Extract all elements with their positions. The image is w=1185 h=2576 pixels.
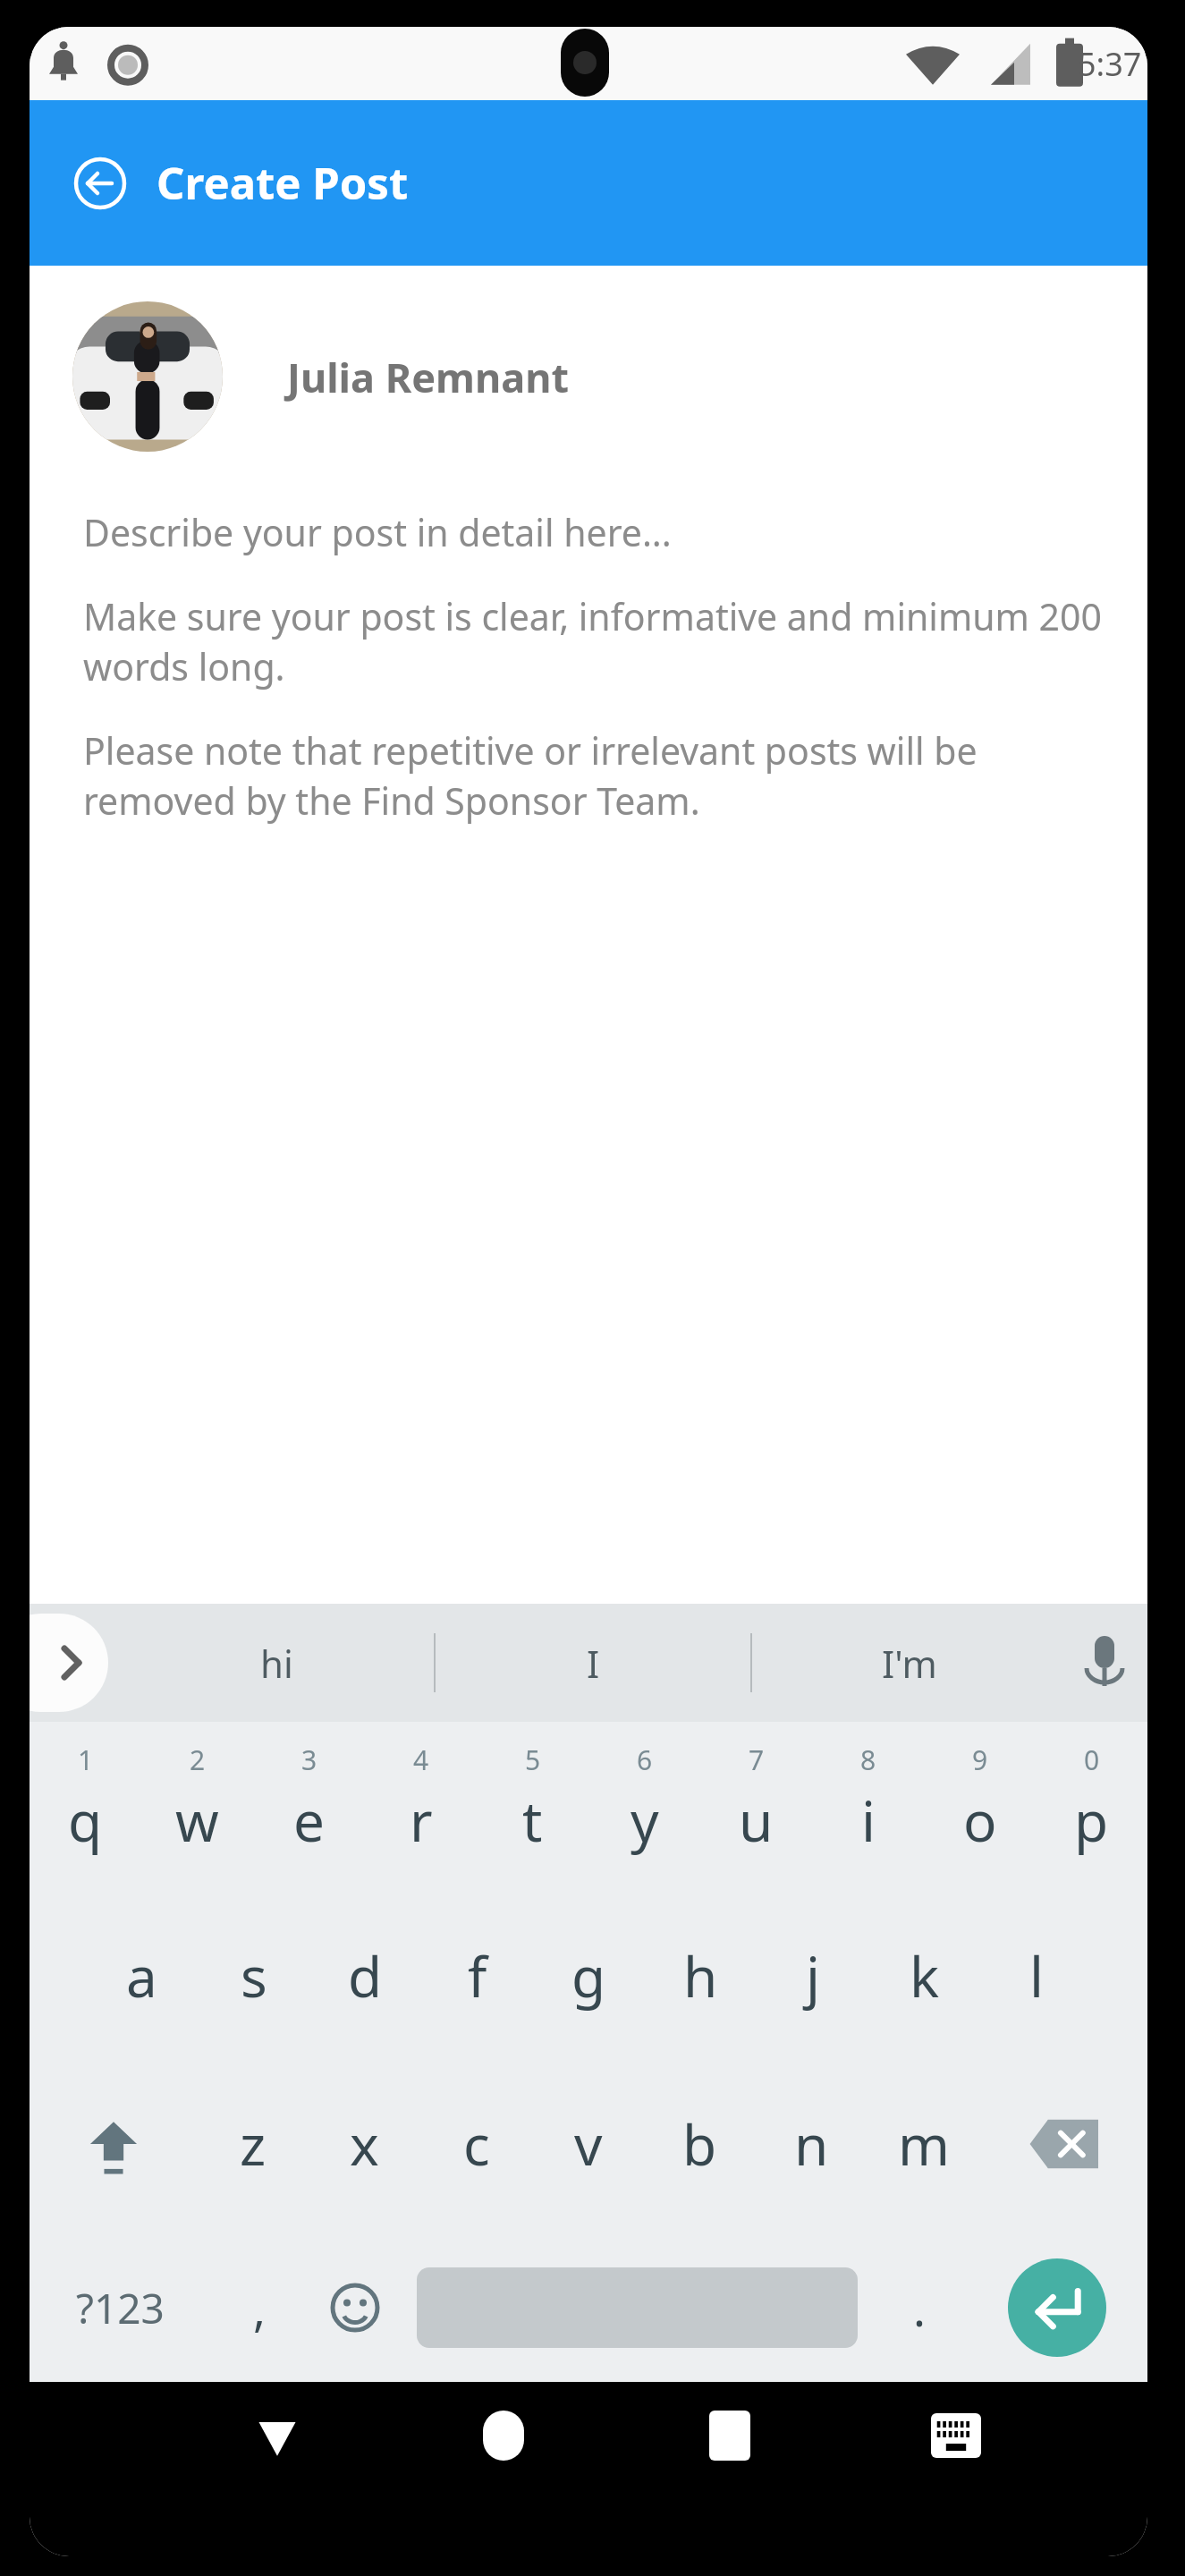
staticText: Make sure your post is clear, informativ… (83, 591, 1105, 691)
button[interactable]: Back (67, 150, 133, 216)
staticText: m (898, 2106, 950, 2182)
staticText: n (794, 2106, 829, 2182)
button[interactable]: 3 (253, 1729, 365, 1886)
button[interactable]: Profile photo (72, 301, 223, 452)
button[interactable]: Back (165, 2382, 390, 2556)
staticText: t (522, 1783, 543, 1858)
staticText: , (253, 2276, 266, 2340)
button[interactable]: 4 (365, 1729, 477, 1886)
button[interactable]: l (980, 1897, 1092, 2055)
staticText: r (410, 1783, 433, 1858)
button[interactable]: I'm (752, 1604, 1067, 1722)
button[interactable]: 6 (588, 1729, 700, 1886)
staticText: 4 (413, 1741, 429, 1778)
staticText: Describe your post in detail here... (83, 507, 672, 557)
button[interactable]: Home (390, 2382, 616, 2556)
staticText: 1 (78, 1741, 94, 1778)
staticText: o (963, 1783, 997, 1858)
button[interactable]: v (532, 2065, 644, 2223)
staticText: . (913, 2276, 926, 2340)
button[interactable]: j (757, 1897, 868, 2055)
staticText: I (587, 1638, 600, 1689)
staticText: 2 (190, 1741, 206, 1778)
staticText: e (293, 1783, 325, 1858)
staticText: Julia Remnant (287, 350, 569, 404)
staticText: 5:37 (1078, 42, 1142, 86)
button[interactable]: ?123 (30, 2233, 211, 2382)
staticText: z (240, 2106, 267, 2182)
button[interactable]: z (197, 2065, 309, 2223)
staticText: j (806, 1938, 820, 2013)
button[interactable]: x (309, 2065, 420, 2223)
button[interactable]: f (421, 1897, 533, 2055)
button[interactable]: Space (402, 2233, 871, 2382)
staticText: g (571, 1938, 606, 2013)
button[interactable]: 5 (477, 1729, 588, 1886)
staticText: l (1029, 1938, 1044, 2013)
staticText: i (861, 1783, 876, 1858)
button[interactable]: Hide keyboard (842, 2382, 1069, 2556)
button[interactable]: g (533, 1897, 645, 2055)
staticText: q (68, 1783, 103, 1858)
button[interactable]: m (868, 2065, 979, 2223)
staticText: 0 (1084, 1741, 1100, 1778)
staticText: 6 (637, 1741, 653, 1778)
button[interactable]: c (420, 2065, 532, 2223)
staticText: c (463, 2106, 490, 2182)
button[interactable]: hi (119, 1604, 434, 1722)
button[interactable]: 0 (1036, 1729, 1147, 1886)
staticText: 9 (972, 1741, 988, 1778)
staticText: y (631, 1783, 659, 1858)
staticText: s (241, 1938, 267, 2013)
button[interactable]: Emoji (307, 2233, 402, 2382)
button[interactable]: 2 (141, 1729, 253, 1886)
staticText: a (126, 1938, 157, 2013)
button[interactable]: b (644, 2065, 756, 2223)
staticText: p (1074, 1783, 1109, 1858)
button[interactable]: 8 (812, 1729, 924, 1886)
staticText: u (739, 1783, 774, 1858)
button[interactable]: Expand suggestions (30, 1614, 108, 1712)
staticText: 8 (860, 1741, 876, 1778)
staticText: h (683, 1938, 718, 2013)
button[interactable]: Shift (30, 2065, 197, 2223)
button[interactable]: d (309, 1897, 421, 2055)
staticText: Create Post (157, 153, 409, 213)
button[interactable]: I (436, 1604, 750, 1722)
button[interactable]: h (645, 1897, 757, 2055)
staticText: ?123 (76, 2280, 165, 2336)
button[interactable]: 1 (30, 1729, 141, 1886)
staticText: 3 (301, 1741, 317, 1778)
staticText: b (682, 2106, 717, 2182)
button[interactable]: . (871, 2233, 967, 2382)
button[interactable]: n (756, 2065, 868, 2223)
button[interactable]: Backspace (979, 2065, 1147, 2223)
staticText: hi (260, 1638, 293, 1689)
staticText: 7 (749, 1741, 765, 1778)
button[interactable]: Recents (616, 2382, 842, 2556)
staticText: k (910, 1938, 940, 2013)
button[interactable]: Enter (967, 2233, 1147, 2382)
staticText: v (574, 2106, 603, 2182)
staticText: x (350, 2106, 379, 2182)
button[interactable]: Voice input (1062, 1620, 1147, 1706)
button[interactable]: , (211, 2233, 307, 2382)
button[interactable]: a (85, 1897, 198, 2055)
staticText: 5 (525, 1741, 541, 1778)
button[interactable]: 9 (924, 1729, 1036, 1886)
staticText: w (175, 1783, 219, 1858)
button[interactable]: 7 (700, 1729, 812, 1886)
staticText: Please note that repetitive or irrelevan… (83, 725, 1105, 826)
staticText: f (468, 1938, 487, 2013)
staticText: d (348, 1938, 383, 2013)
button[interactable]: k (868, 1897, 980, 2055)
button[interactable]: s (198, 1897, 309, 2055)
staticText: I'm (882, 1638, 937, 1689)
